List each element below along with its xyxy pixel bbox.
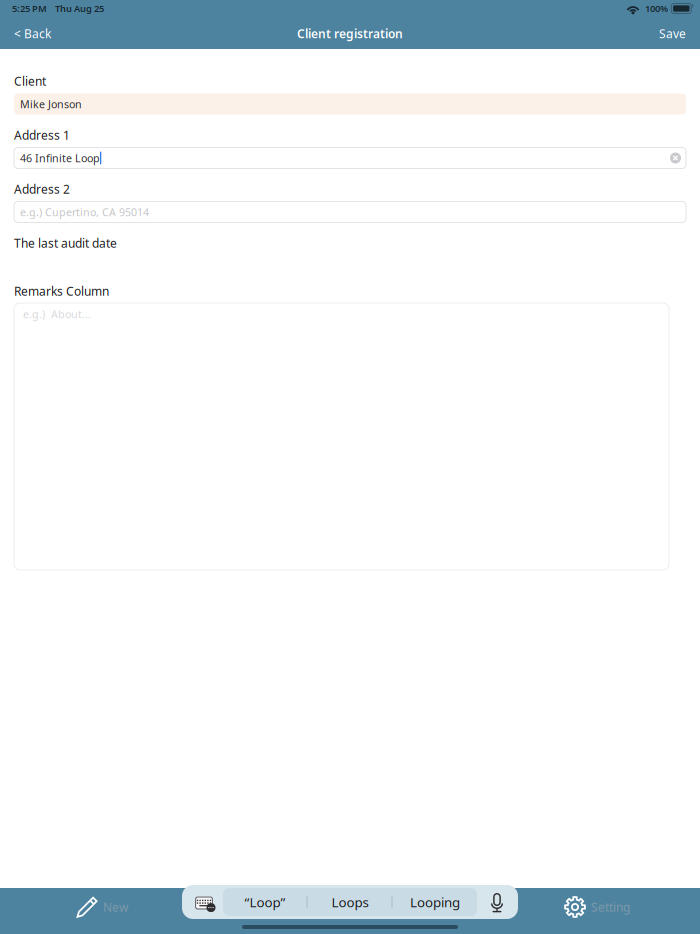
button[interactable]: Clear Address 1 [669,151,682,164]
staticText: Setting [591,899,630,915]
button[interactable]: Looping [393,888,477,916]
button[interactable]: Dictation [478,887,516,919]
staticText: e.g.) Cupertino, CA 95014 [20,205,149,219]
staticText: New [103,899,128,915]
staticText: “Loop” [244,893,285,911]
button[interactable]: Loops [308,888,392,916]
staticText: Save [659,25,686,41]
button[interactable]: “Loop” [223,888,307,916]
button[interactable]: Setting [517,884,677,930]
staticText: Looping [410,893,460,911]
staticText: Thu Aug 25 [55,2,104,15]
staticText: Remarks Column [14,283,109,299]
staticText: Client [14,73,46,89]
button[interactable]: Save [580,18,700,49]
staticText: Address 2 [14,181,70,197]
staticText: The last audit date [14,235,117,251]
staticText: 5:25 PM [12,2,47,15]
staticText: < Back [14,25,51,41]
button[interactable]: New [22,884,182,930]
staticText: 100% [645,2,668,15]
staticText: Address 1 [14,127,70,143]
staticText: Loops [331,893,368,911]
button[interactable]: Hide keyboard [184,887,224,919]
staticText: Mike Jonson [20,97,82,111]
staticText: e.g.) About... [23,307,91,321]
staticText: 46 Infinite Loop [20,151,100,165]
staticText: Client registration [297,25,403,41]
button[interactable]: < Back [0,18,120,49]
